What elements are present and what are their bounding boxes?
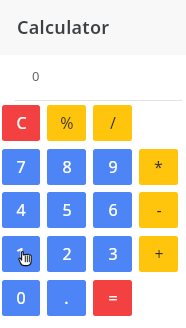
staticText: 7 xyxy=(16,156,26,178)
button[interactable]: 3 xyxy=(93,236,132,272)
button[interactable]: 8 xyxy=(47,149,86,185)
button[interactable]: . xyxy=(47,280,86,316)
staticText: 8 xyxy=(62,156,72,178)
button[interactable]: 4 xyxy=(2,192,40,228)
staticText: 9 xyxy=(108,156,118,178)
staticText: Calculator xyxy=(17,15,110,40)
staticText: . xyxy=(64,287,69,309)
staticText: 0 xyxy=(32,67,40,85)
button[interactable]: 5 xyxy=(47,192,86,228)
button[interactable]: 1 xyxy=(2,236,40,272)
staticText: * xyxy=(154,156,163,178)
button[interactable]: = xyxy=(93,280,132,316)
button[interactable]: 0 xyxy=(2,280,40,316)
button[interactable]: 9 xyxy=(93,149,132,185)
staticText: 3 xyxy=(108,243,118,265)
button[interactable]: - xyxy=(139,192,178,228)
button[interactable]: 2 xyxy=(47,236,86,272)
staticText: 2 xyxy=(62,243,72,265)
staticText: 4 xyxy=(16,199,26,221)
button[interactable]: % xyxy=(47,105,86,141)
button[interactable]: / xyxy=(93,105,132,141)
button[interactable]: C xyxy=(2,105,40,141)
button[interactable]: 6 xyxy=(93,192,132,228)
staticText: = xyxy=(108,287,118,309)
staticText: C xyxy=(16,112,27,134)
staticText: % xyxy=(60,112,74,134)
staticText: + xyxy=(154,243,164,265)
staticText: 6 xyxy=(108,199,118,221)
staticText: 1 xyxy=(16,243,26,265)
button[interactable]: * xyxy=(139,149,178,185)
staticText: 5 xyxy=(62,199,72,221)
staticText: / xyxy=(110,112,116,134)
staticText: 0 xyxy=(16,287,26,309)
button[interactable]: + xyxy=(139,236,178,272)
button[interactable]: 7 xyxy=(2,149,40,185)
staticText: - xyxy=(156,199,162,221)
